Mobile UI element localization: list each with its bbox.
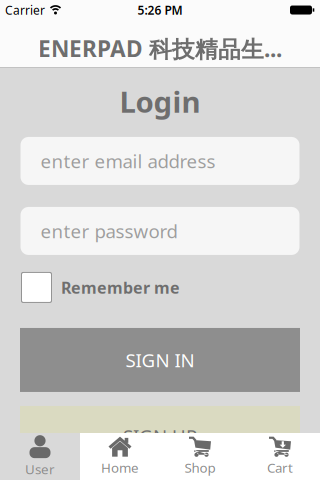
button[interactable]: Shop [160,433,240,480]
staticText: SIGN IN [125,348,194,372]
staticText: User [25,460,55,478]
staticText: enter email address [40,149,215,173]
staticText: SIGN UP [123,424,197,448]
staticText: Home [101,459,139,476]
button[interactable]: SIGN IN [20,328,300,392]
button[interactable]: SIGN UP [20,406,300,470]
button[interactable]: enter email address [20,137,299,185]
staticText: enter password [40,219,177,243]
staticText: Login [119,82,200,121]
button[interactable]: User [0,433,80,480]
staticText: 5:26 PM [137,2,182,18]
button[interactable]: Home [80,433,160,480]
button[interactable]: enter password [20,207,299,255]
button[interactable]: Remember me [21,272,180,303]
staticText: ENERPAD 科技精品生... [38,33,282,64]
staticText: Carrier [5,2,45,18]
staticText: Cart [267,459,293,476]
button[interactable]: Cart [240,433,320,480]
staticText: Shop [184,459,215,476]
staticText: Remember me [61,277,180,298]
